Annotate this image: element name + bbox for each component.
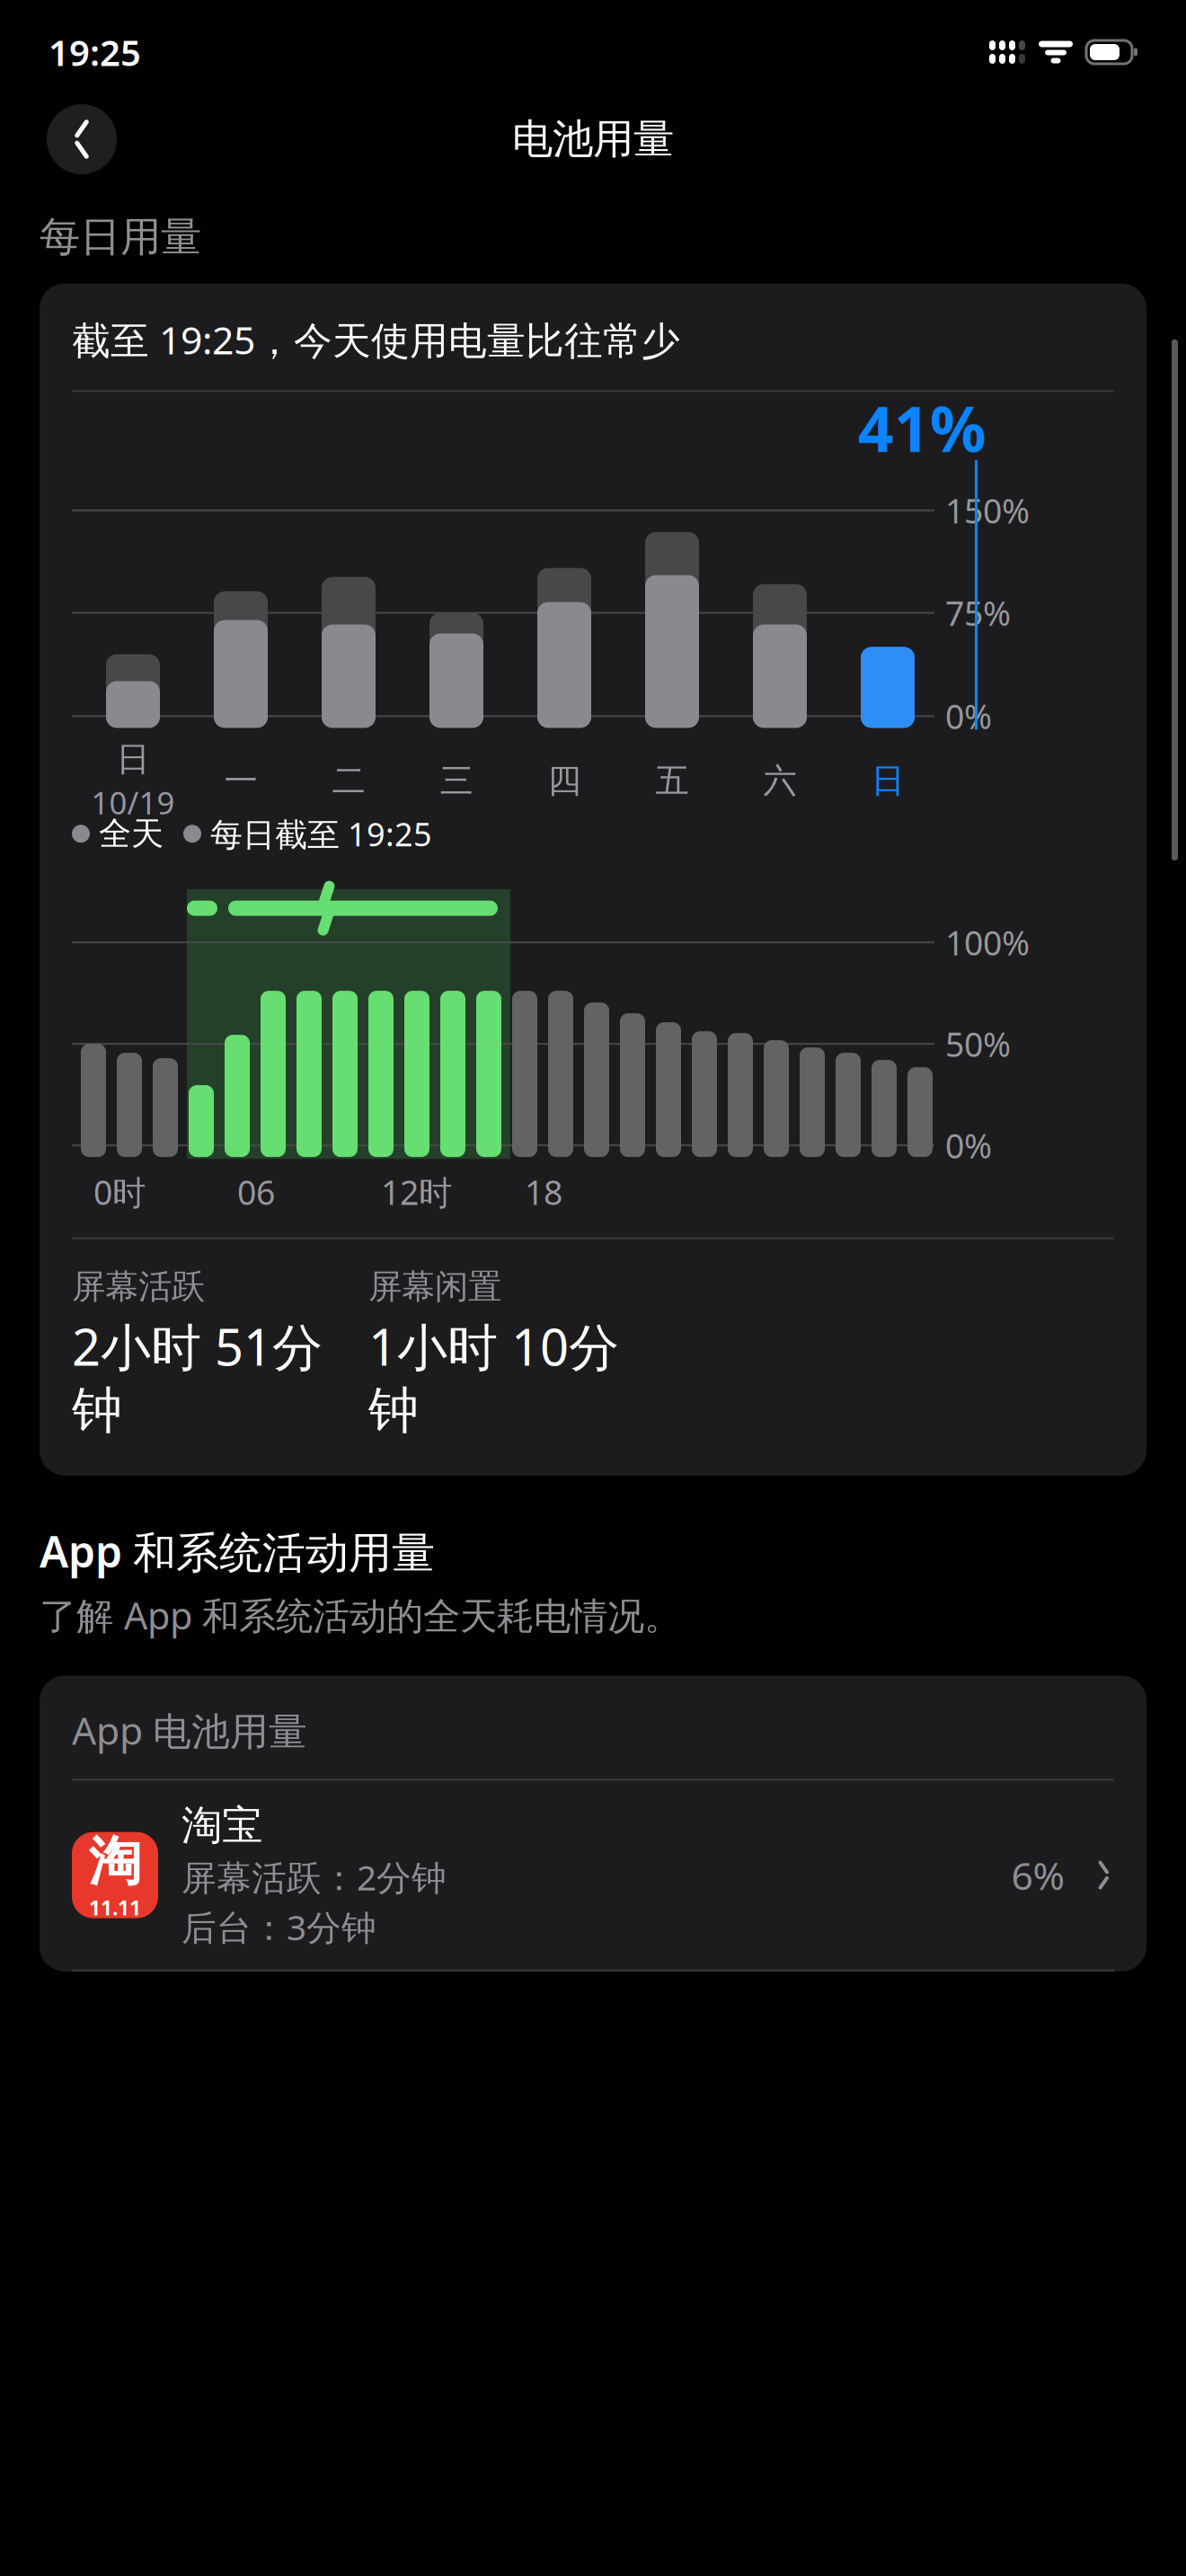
staticText: 六 (763, 760, 797, 801)
staticText: 淘 (89, 1829, 142, 1894)
staticText: 五 (655, 760, 689, 801)
staticText: 四 (548, 760, 581, 801)
staticText: 淘宝 (181, 1800, 262, 1850)
staticText: 了解 App 和系统活动的全天耗电情况。 (40, 1590, 681, 1640)
staticText: 0时 (93, 1170, 146, 1214)
staticText: App 和系统活动用量 (40, 1522, 435, 1580)
staticText: 后台：3分钟 (181, 1904, 376, 1950)
staticText: 6% (1011, 1850, 1064, 1901)
staticText: 41% (858, 386, 987, 469)
staticText: 75% (945, 591, 1011, 635)
staticText: 二 (332, 760, 365, 801)
staticText: 19:25 (49, 28, 141, 76)
staticText: 18 (525, 1170, 562, 1214)
staticText: 一 (224, 760, 257, 801)
staticText: 屏幕活跃 (72, 1266, 205, 1307)
button[interactable]: 淘 (72, 1781, 1114, 1970)
staticText: 150% (945, 488, 1030, 533)
staticText: 三 (440, 760, 473, 801)
staticText: 屏幕闲置 (368, 1266, 501, 1307)
staticText: 06 (237, 1170, 275, 1214)
staticText: 10/19 (91, 782, 175, 823)
staticText: 11.11 (89, 1894, 141, 1921)
staticText: App 电池用量 (72, 1704, 307, 1756)
staticText: 12时 (381, 1170, 452, 1214)
staticText: 0% (945, 1123, 992, 1168)
staticText: 1小时 10分钟 (368, 1313, 619, 1441)
staticText: 日 (871, 760, 904, 801)
button[interactable]: 返回 (47, 104, 117, 174)
staticText: 50% (945, 1022, 1011, 1066)
staticText: 2小时 51分钟 (72, 1313, 323, 1441)
staticText: 每日用量 (40, 212, 201, 262)
staticText: 电池用量 (512, 114, 674, 164)
staticText: 100% (945, 920, 1030, 965)
staticText: 屏幕活跃：2分钟 (181, 1854, 447, 1900)
staticText: 每日截至 19:25 (210, 812, 432, 855)
staticText: 全天 (99, 814, 164, 854)
staticText: 0% (945, 694, 992, 738)
staticText: 截至 19:25，今天使用电量比往常少 (72, 314, 680, 365)
staticText: 日 (116, 739, 150, 780)
